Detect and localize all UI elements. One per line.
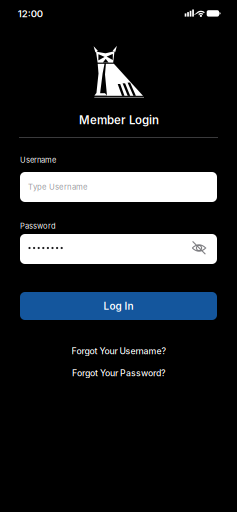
staticText: Forgot Your Password? (72, 368, 166, 378)
staticText: Type Username (28, 182, 88, 192)
staticText: Username (20, 155, 56, 165)
staticText: Member Login (79, 113, 159, 127)
button[interactable]: Log In (20, 292, 217, 320)
staticText: Forgot Your Username? (71, 346, 166, 356)
staticText: Password (20, 221, 56, 231)
staticText: Log In (103, 300, 133, 312)
button[interactable]: Forgot Your Username? (71, 346, 166, 356)
button[interactable]: Forgot Your Password? (72, 368, 166, 378)
button[interactable]: Password text field (20, 234, 217, 264)
staticText: 12:00 (18, 8, 43, 20)
button[interactable]: Username text field (20, 172, 217, 202)
button[interactable]: Show password (188, 237, 210, 259)
